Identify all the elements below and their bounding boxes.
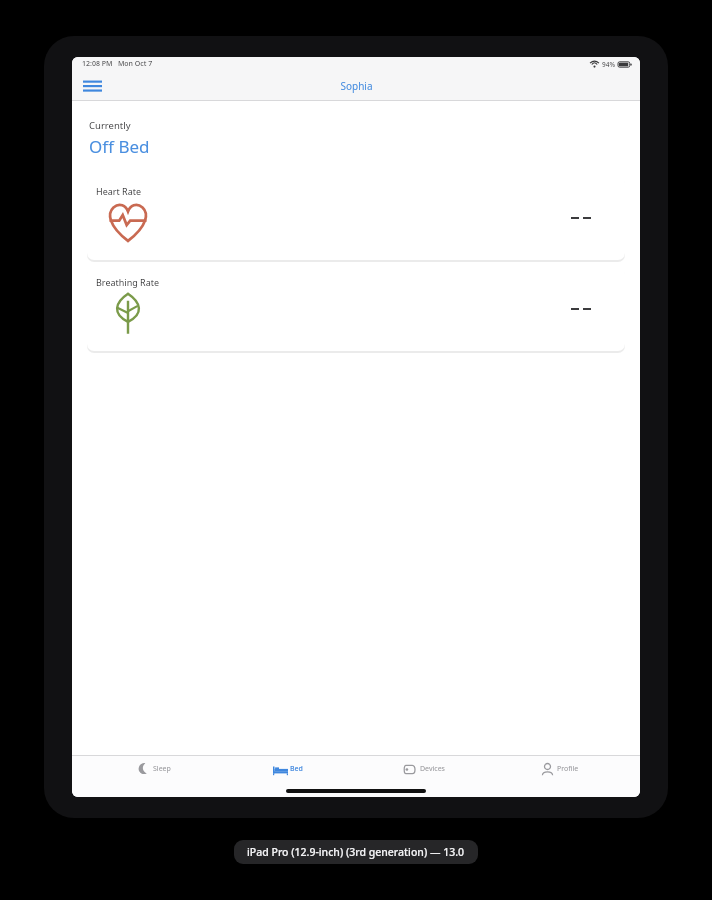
staticText: Sleep [153, 764, 171, 774]
staticText: Breathing Rate [96, 276, 160, 288]
other: Heart rate [106, 200, 150, 244]
button[interactable]: Menu [78, 72, 106, 100]
staticText: 12:08 PM Mon Oct 7 [82, 59, 153, 69]
button[interactable]: Devices [369, 757, 479, 781]
staticText: Profile [557, 764, 579, 774]
staticText: iPad Pro (12.9-inch) (3rd generation) — … [247, 845, 465, 859]
staticText: Sophia [340, 79, 373, 93]
button[interactable]: Breathing Rate [87, 267, 625, 351]
button[interactable]: Profile [504, 757, 614, 781]
button[interactable]: Sleep [98, 757, 208, 781]
button[interactable]: Heart Rate [87, 176, 625, 260]
other: Breathing rate [106, 291, 150, 335]
staticText: Off Bed [89, 135, 150, 158]
staticText: Bed [290, 764, 303, 774]
button[interactable]: Bed [233, 757, 343, 781]
staticText: Heart Rate [96, 185, 142, 197]
staticText: 94% [602, 60, 615, 69]
staticText: Currently [89, 119, 131, 132]
staticText: Devices [420, 764, 445, 774]
